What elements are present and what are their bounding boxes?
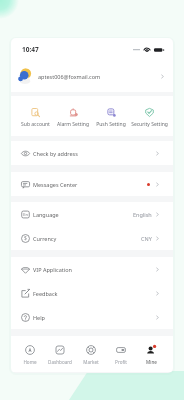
staticText: Alarm Setting	[57, 121, 89, 128]
staticText: Market	[83, 359, 99, 365]
button[interactable]: Messages Center	[11, 172, 173, 196]
button[interactable]: En	[11, 202, 173, 226]
staticText: Mine	[146, 359, 157, 365]
button[interactable]: Feedback	[11, 281, 173, 305]
staticText: Messages Center	[33, 181, 78, 188]
staticText: Profit	[115, 359, 127, 365]
button[interactable]: Sub account	[16, 105, 54, 128]
button[interactable]: Home	[15, 343, 45, 365]
staticText: Dashboard	[48, 359, 72, 365]
staticText: Sub account	[21, 121, 50, 128]
staticText: Currency	[33, 235, 57, 242]
button[interactable]: VIP Application	[11, 257, 173, 281]
staticText: CNY	[141, 235, 152, 242]
staticText: 10:47	[22, 45, 39, 54]
button[interactable]: Market	[76, 343, 106, 365]
button[interactable]: Check by address	[11, 141, 173, 165]
staticText: Security Setting	[131, 121, 168, 128]
staticText: Feedback	[33, 290, 58, 297]
staticText: VIP Application	[33, 266, 72, 273]
button[interactable]: Push Setting	[92, 105, 130, 128]
staticText: English	[133, 211, 152, 218]
button[interactable]: Security Setting	[130, 105, 168, 128]
staticText: Help	[33, 314, 45, 321]
button[interactable]: Alarm Setting	[54, 105, 92, 128]
button[interactable]: Profit	[106, 343, 136, 365]
staticText: Push Setting	[96, 121, 126, 128]
staticText: aptest006@foxmail.com	[38, 73, 101, 80]
button[interactable]: $	[11, 226, 173, 250]
staticText: $	[24, 235, 27, 242]
button[interactable]: Help	[11, 305, 173, 329]
staticText: Language	[33, 211, 59, 218]
button[interactable]: aptest006@foxmail.com	[11, 60, 173, 92]
staticText: Home	[23, 359, 37, 365]
staticText: Check by address	[33, 150, 78, 157]
button[interactable]: Dashboard	[45, 343, 75, 365]
staticText: En	[23, 212, 28, 217]
button[interactable]: Mine	[136, 343, 166, 365]
